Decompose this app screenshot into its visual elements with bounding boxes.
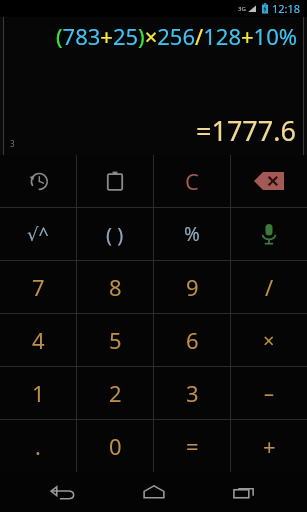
staticText: + bbox=[263, 431, 276, 461]
button[interactable]: / bbox=[231, 261, 307, 313]
staticText: . bbox=[35, 431, 41, 461]
staticText: 8 bbox=[109, 272, 122, 302]
button[interactable]: History bbox=[0, 155, 76, 207]
button[interactable]: = bbox=[154, 420, 230, 472]
staticText: 6 bbox=[186, 325, 199, 355]
button[interactable]: . bbox=[0, 420, 76, 472]
staticText: 2 bbox=[109, 378, 122, 408]
button[interactable]: + bbox=[231, 420, 307, 472]
button[interactable]: 8 bbox=[77, 261, 153, 313]
staticText: / bbox=[265, 272, 274, 302]
button[interactable]: 0 bbox=[77, 420, 153, 472]
staticText: (783+25)×256/128+10% bbox=[56, 21, 298, 51]
staticText: C bbox=[185, 166, 199, 196]
button[interactable]: 9 bbox=[154, 261, 230, 313]
staticText: 7 bbox=[32, 272, 45, 302]
button[interactable]: Backspace bbox=[231, 155, 307, 207]
staticText: = bbox=[186, 431, 199, 461]
staticText: 3 bbox=[186, 378, 199, 408]
button[interactable]: % bbox=[154, 208, 230, 260]
staticText: 1 bbox=[32, 378, 45, 408]
button[interactable]: 4 bbox=[0, 314, 76, 366]
staticText: 9 bbox=[186, 272, 199, 302]
button[interactable]: Clipboard bbox=[77, 155, 153, 207]
button[interactable]: ( ) bbox=[77, 208, 153, 260]
staticText: =1777.6 bbox=[196, 112, 296, 149]
button[interactable]: 5 bbox=[77, 314, 153, 366]
button[interactable]: Clear bbox=[154, 155, 230, 207]
staticText: 0 bbox=[109, 431, 122, 461]
button[interactable]: Home bbox=[126, 472, 182, 512]
button[interactable]: 6 bbox=[154, 314, 230, 366]
button[interactable]: √^ bbox=[0, 208, 76, 260]
staticText: 4 bbox=[32, 325, 45, 355]
button[interactable]: 7 bbox=[0, 261, 76, 313]
staticText: 3 bbox=[10, 138, 15, 149]
staticText: ( ) bbox=[106, 221, 124, 248]
staticText: % bbox=[184, 221, 200, 247]
staticText: √^ bbox=[27, 222, 49, 247]
button[interactable]: 2 bbox=[77, 367, 153, 419]
button[interactable]: Recent apps bbox=[216, 472, 272, 512]
button[interactable]: Voice input bbox=[231, 208, 307, 260]
button[interactable]: 3 bbox=[154, 367, 230, 419]
staticText: 5 bbox=[109, 325, 122, 355]
staticText: 3G bbox=[238, 5, 246, 13]
button[interactable]: × bbox=[231, 314, 307, 366]
button[interactable]: Back bbox=[35, 472, 91, 512]
staticText: × bbox=[263, 327, 275, 354]
staticText: 12:18 bbox=[272, 1, 301, 16]
button[interactable]: – bbox=[231, 367, 307, 419]
staticText: – bbox=[264, 380, 274, 407]
button[interactable]: 1 bbox=[0, 367, 76, 419]
